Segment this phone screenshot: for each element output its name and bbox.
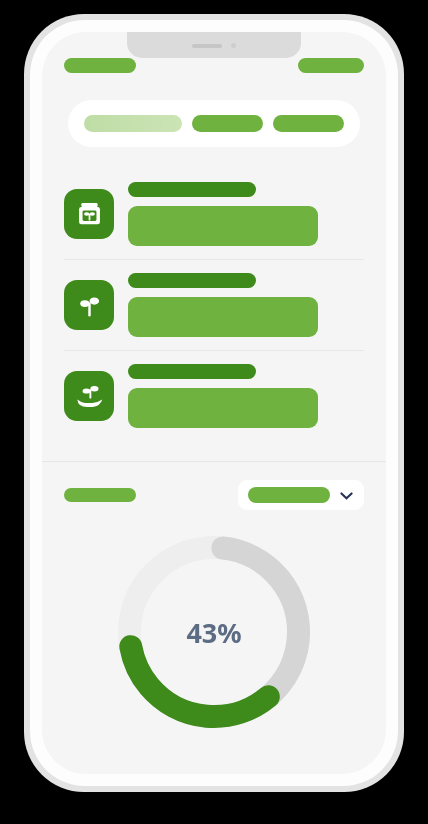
other: Sustainable growing [64,371,114,421]
button[interactable]: Tab three [273,115,344,132]
other: Fertilizer [64,189,114,239]
button[interactable]: Tab two [192,115,263,132]
button[interactable]: Fertilizer [42,169,386,259]
button[interactable]: Menu [64,58,136,73]
button[interactable]: Profile [298,58,364,73]
button[interactable]: Tab one, selected [84,115,182,132]
button[interactable]: Sustainable growing [42,351,386,441]
other: Seedling [64,280,114,330]
button[interactable]: Select period [238,480,364,510]
button[interactable]: Seedling [42,260,386,350]
staticText: 43% [186,614,242,651]
